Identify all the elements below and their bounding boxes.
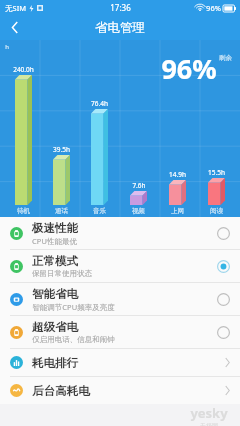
- staticText: 耗电排行: [32, 356, 78, 370]
- button[interactable]: 超级省电: [0, 316, 240, 348]
- staticText: 通话: [55, 207, 68, 215]
- staticText: 保留日常使用状态: [32, 269, 92, 278]
- staticText: 音乐: [93, 207, 106, 215]
- staticText: 阅读: [210, 207, 223, 215]
- button[interactable]: 智能省电: [0, 283, 240, 315]
- staticText: h: [5, 43, 9, 51]
- staticText: 15.5h: [208, 168, 225, 177]
- staticText: 96%: [206, 3, 221, 13]
- button[interactable]: 极速性能: [0, 217, 240, 249]
- staticText: 仅启用电话、信息和闹钟: [32, 335, 115, 344]
- button[interactable]: 后台高耗电: [0, 377, 240, 404]
- staticText: 剩余: [219, 54, 232, 62]
- staticText: 上网: [171, 207, 184, 215]
- staticText: 14.9h: [169, 170, 186, 179]
- staticText: 240.0h: [13, 65, 34, 74]
- staticText: 智能省电: [32, 287, 78, 301]
- staticText: 7.6h: [132, 181, 146, 190]
- staticText: yesky: [190, 404, 228, 422]
- staticText: 无SIM: [5, 3, 26, 13]
- staticText: 76.4h: [91, 99, 108, 108]
- staticText: 96%: [161, 50, 217, 87]
- button[interactable]: Back: [0, 15, 30, 40]
- staticText: 极速性能: [32, 221, 78, 235]
- staticText: 超级省电: [32, 320, 78, 334]
- staticText: CPU性能最优: [32, 236, 77, 246]
- staticText: 待机: [17, 207, 30, 215]
- staticText: 17:36: [110, 2, 131, 13]
- staticText: 天极网: [200, 422, 218, 426]
- button[interactable]: 正常模式: [0, 250, 240, 282]
- staticText: 省电管理: [95, 20, 145, 36]
- staticText: 39.5h: [53, 145, 70, 154]
- staticText: 正常模式: [32, 254, 78, 268]
- staticText: 后台高耗电: [32, 384, 90, 398]
- staticText: 智能调节CPU频率及亮度: [32, 302, 115, 312]
- staticText: 视频: [132, 207, 145, 215]
- button[interactable]: 耗电排行: [0, 349, 240, 376]
